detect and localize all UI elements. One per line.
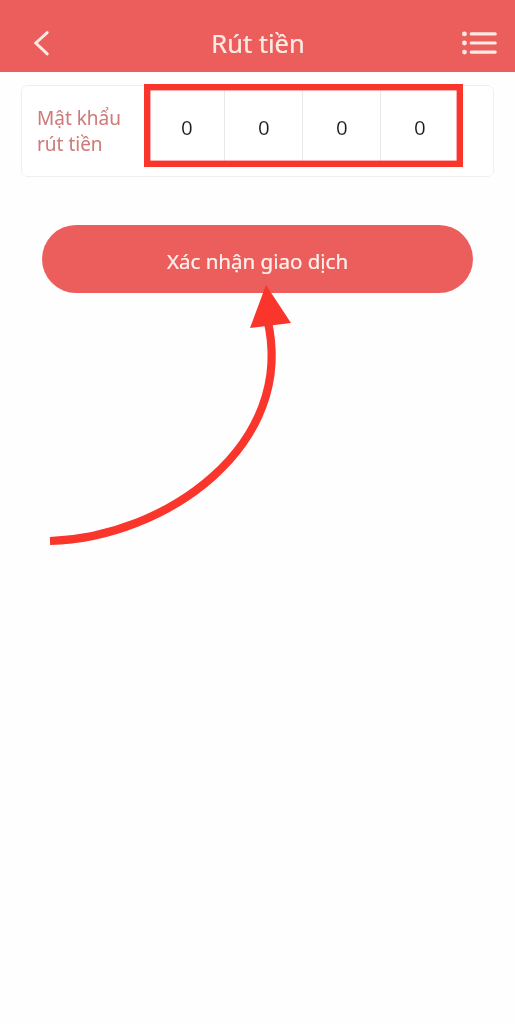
button[interactable]: Digit 1 [148,89,225,165]
staticText: 0 [336,113,348,141]
staticText: Xác nhận giao dịch [167,247,349,275]
button[interactable]: Digit 3 [303,89,381,165]
staticText: 0 [414,113,426,141]
staticText: 0 [258,113,270,141]
staticText: Rút tiền [211,26,305,61]
button[interactable]: Digit 2 [225,89,303,165]
button[interactable]: Digit 4 [381,89,459,165]
button[interactable]: Menu [455,19,503,67]
button[interactable]: Xác nhận giao dịch [42,225,473,293]
staticText: Mật khẩu rút tiền [37,105,121,157]
button[interactable]: Back [17,19,65,67]
staticText: 0 [181,113,193,141]
